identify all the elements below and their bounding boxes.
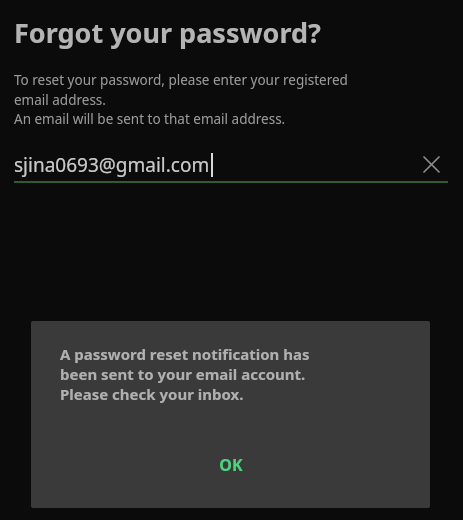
staticText: A password reset notification has been s… (60, 344, 310, 404)
staticText: To reset your password, please enter you… (14, 71, 348, 128)
button[interactable]: OK (171, 446, 291, 484)
button[interactable]: Clear email (414, 148, 448, 181)
button[interactable]: sjina0693@gmail.com (14, 148, 448, 181)
staticText: OK (219, 454, 243, 476)
staticText: sjina0693@gmail.com (14, 152, 210, 178)
staticText: Forgot your password? (14, 14, 321, 51)
